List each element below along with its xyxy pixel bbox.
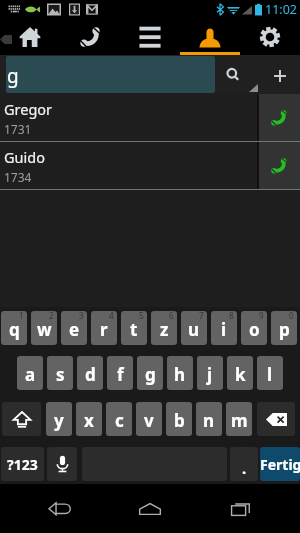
staticText: j (207, 363, 213, 386)
staticText: b (174, 409, 185, 432)
staticText: Fertig (260, 455, 300, 474)
staticText: 7 (199, 311, 204, 321)
staticText: t (130, 318, 138, 341)
button[interactable]: Back (30, 484, 90, 533)
staticText: f (117, 363, 124, 386)
staticText: l (267, 363, 273, 386)
staticText: 4 (109, 311, 114, 321)
button[interactable]: k (227, 356, 253, 390)
button[interactable]: Call log (60, 18, 120, 55)
staticText: . (242, 458, 247, 478)
staticText: i (221, 318, 227, 341)
staticText: p (279, 318, 290, 341)
staticText: n (203, 409, 215, 432)
button[interactable]: g (137, 356, 163, 390)
staticText: 2 (49, 311, 54, 321)
staticText: 11:02 (265, 1, 297, 18)
button[interactable]: b (166, 402, 192, 436)
staticText: m (231, 409, 248, 432)
button[interactable]: v (136, 402, 162, 436)
button[interactable]: Shift (2, 402, 41, 436)
button[interactable]: p (271, 311, 297, 345)
staticText: k (235, 363, 246, 386)
staticText: g (7, 63, 19, 89)
button[interactable]: Home (0, 18, 60, 55)
staticText: Gregor (4, 99, 53, 119)
button[interactable]: x (76, 402, 102, 436)
staticText: 6 (169, 311, 174, 321)
button[interactable]: Contacts (180, 18, 240, 55)
button[interactable]: q (1, 311, 27, 345)
staticText: ?123 (7, 455, 38, 474)
button[interactable]: Fertig (260, 447, 300, 481)
button[interactable]: h (167, 356, 193, 390)
button[interactable]: . (230, 447, 258, 481)
staticText: d (85, 363, 96, 386)
staticText: z (160, 318, 169, 341)
button[interactable]: r (91, 311, 117, 345)
button[interactable]: f (107, 356, 133, 390)
button[interactable]: Call Gregor (259, 94, 300, 141)
staticText: h (174, 363, 186, 386)
button[interactable]: Backspace (257, 402, 295, 436)
staticText: 5 (139, 311, 144, 321)
button[interactable]: g (6, 56, 215, 93)
staticText: e (69, 318, 80, 341)
button[interactable]: ?123 (1, 447, 44, 481)
button[interactable]: Home (120, 484, 180, 533)
button[interactable]: Guido (0, 142, 257, 189)
staticText: g (145, 363, 156, 386)
staticText: o (249, 318, 260, 341)
button[interactable]: Add contact (267, 55, 292, 94)
staticText: c (115, 409, 124, 432)
button[interactable]: u (181, 311, 207, 345)
staticText: v (144, 409, 154, 432)
button[interactable]: Gregor (0, 94, 257, 141)
button[interactable]: d (77, 356, 103, 390)
button[interactable]: n (196, 402, 222, 436)
button[interactable]: s (47, 356, 73, 390)
staticText: x (84, 409, 94, 432)
staticText: 0 (289, 311, 294, 321)
button[interactable]: z (151, 311, 177, 345)
button[interactable]: m (226, 402, 252, 436)
button[interactable]: c (106, 402, 132, 436)
button[interactable]: l (257, 356, 283, 390)
staticText: 1734 (4, 169, 32, 185)
button[interactable]: i (211, 311, 237, 345)
button[interactable]: t (121, 311, 147, 345)
button[interactable]: Search (220, 55, 245, 94)
staticText: 1731 (4, 121, 32, 137)
button[interactable]: y (46, 402, 72, 436)
button[interactable]: j (197, 356, 223, 390)
staticText: r (100, 318, 108, 341)
button[interactable]: o (241, 311, 267, 345)
button[interactable]: e (61, 311, 87, 345)
staticText: s (56, 363, 65, 386)
staticText: a (25, 363, 36, 386)
staticText: y (54, 409, 64, 432)
staticText: 8 (229, 311, 234, 321)
staticText: Guido (4, 147, 45, 167)
button[interactable]: w (31, 311, 57, 345)
button[interactable]: Recent apps (210, 484, 270, 533)
staticText: 3 (79, 311, 84, 321)
staticText: 9 (259, 311, 264, 321)
button[interactable]: a (17, 356, 43, 390)
button[interactable]: Groups (120, 18, 180, 55)
staticText: 1 (19, 311, 24, 321)
staticText: q (9, 318, 20, 341)
button[interactable]: Call Guido (259, 142, 300, 189)
staticText: w (37, 318, 52, 341)
button[interactable]: Voice input (47, 447, 77, 481)
staticText: u (188, 318, 200, 341)
button[interactable]: Settings (240, 18, 300, 55)
